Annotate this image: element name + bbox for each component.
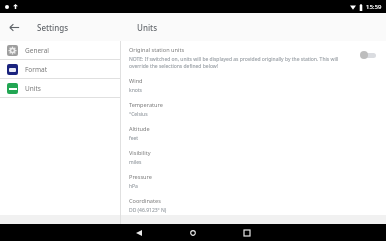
button[interactable]: General bbox=[0, 41, 120, 59]
button[interactable]: Visibility bbox=[129, 149, 380, 166]
staticText: feet bbox=[129, 135, 139, 142]
button[interactable]: Toggle original station units bbox=[358, 48, 380, 62]
button[interactable]: Original station units bbox=[129, 46, 380, 70]
staticText: General bbox=[25, 46, 49, 55]
button[interactable]: Altitude bbox=[129, 125, 380, 142]
staticText: Format bbox=[25, 65, 48, 74]
staticText: Temperature bbox=[129, 101, 163, 109]
button[interactable]: Coordinates bbox=[129, 197, 380, 214]
button[interactable]: Recent apps bbox=[239, 225, 255, 241]
staticText: Pressure bbox=[129, 173, 152, 181]
staticText: miles bbox=[129, 159, 142, 166]
button[interactable]: Pressure bbox=[129, 173, 380, 190]
staticText: Units bbox=[25, 84, 41, 93]
staticText: Visibility bbox=[129, 149, 151, 157]
staticText: hPa bbox=[129, 183, 138, 190]
staticText: Coordinates bbox=[129, 197, 161, 205]
button[interactable]: Units bbox=[0, 79, 120, 97]
staticText: knots bbox=[129, 87, 142, 94]
button[interactable]: Wind bbox=[129, 77, 380, 94]
staticText: Wind bbox=[129, 77, 143, 85]
button[interactable]: Home bbox=[185, 225, 201, 241]
staticText: Units bbox=[137, 22, 158, 33]
staticText: 15:59 bbox=[366, 3, 382, 11]
button[interactable]: Temperature bbox=[129, 101, 380, 118]
staticText: Settings bbox=[37, 22, 69, 33]
staticText: Altitude bbox=[129, 125, 150, 133]
button[interactable]: Back bbox=[131, 225, 147, 241]
staticText: DD (46.9123° N) bbox=[129, 207, 167, 214]
staticText: Original station units bbox=[129, 46, 185, 54]
button[interactable]: Back bbox=[0, 13, 28, 41]
staticText: NOTE: If switched on, units will be disp… bbox=[129, 56, 350, 70]
button[interactable]: Format bbox=[0, 60, 120, 78]
staticText: °Celsius bbox=[129, 111, 148, 118]
